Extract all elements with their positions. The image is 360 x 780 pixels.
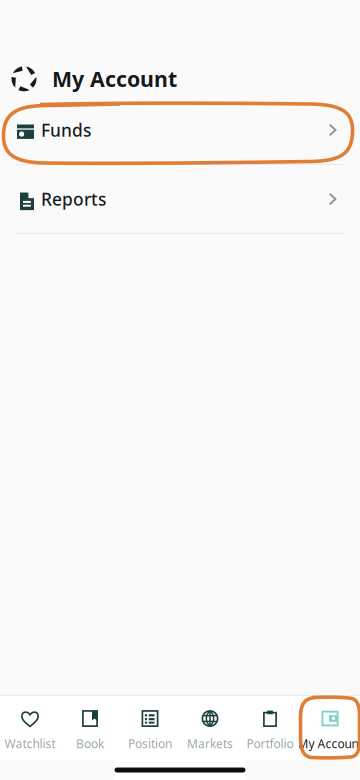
button[interactable]: Position — [120, 695, 180, 760]
staticText: Reports — [41, 187, 106, 210]
staticText: My Account — [52, 65, 177, 93]
button[interactable]: Reports — [0, 165, 360, 233]
staticText: Position — [128, 735, 172, 751]
button[interactable]: Funds — [0, 96, 360, 164]
button[interactable]: Portfolio — [240, 695, 300, 760]
staticText: My Account — [297, 735, 360, 751]
button[interactable]: Watchlist — [0, 695, 60, 760]
staticText: Funds — [41, 118, 91, 141]
staticText: Watchlist — [4, 735, 55, 751]
button[interactable]: Markets — [180, 695, 240, 760]
button[interactable]: My Account — [300, 695, 360, 760]
staticText: Book — [76, 735, 104, 751]
button[interactable]: Book — [60, 695, 120, 760]
staticText: Markets — [187, 735, 233, 751]
staticText: Portfolio — [246, 735, 293, 751]
